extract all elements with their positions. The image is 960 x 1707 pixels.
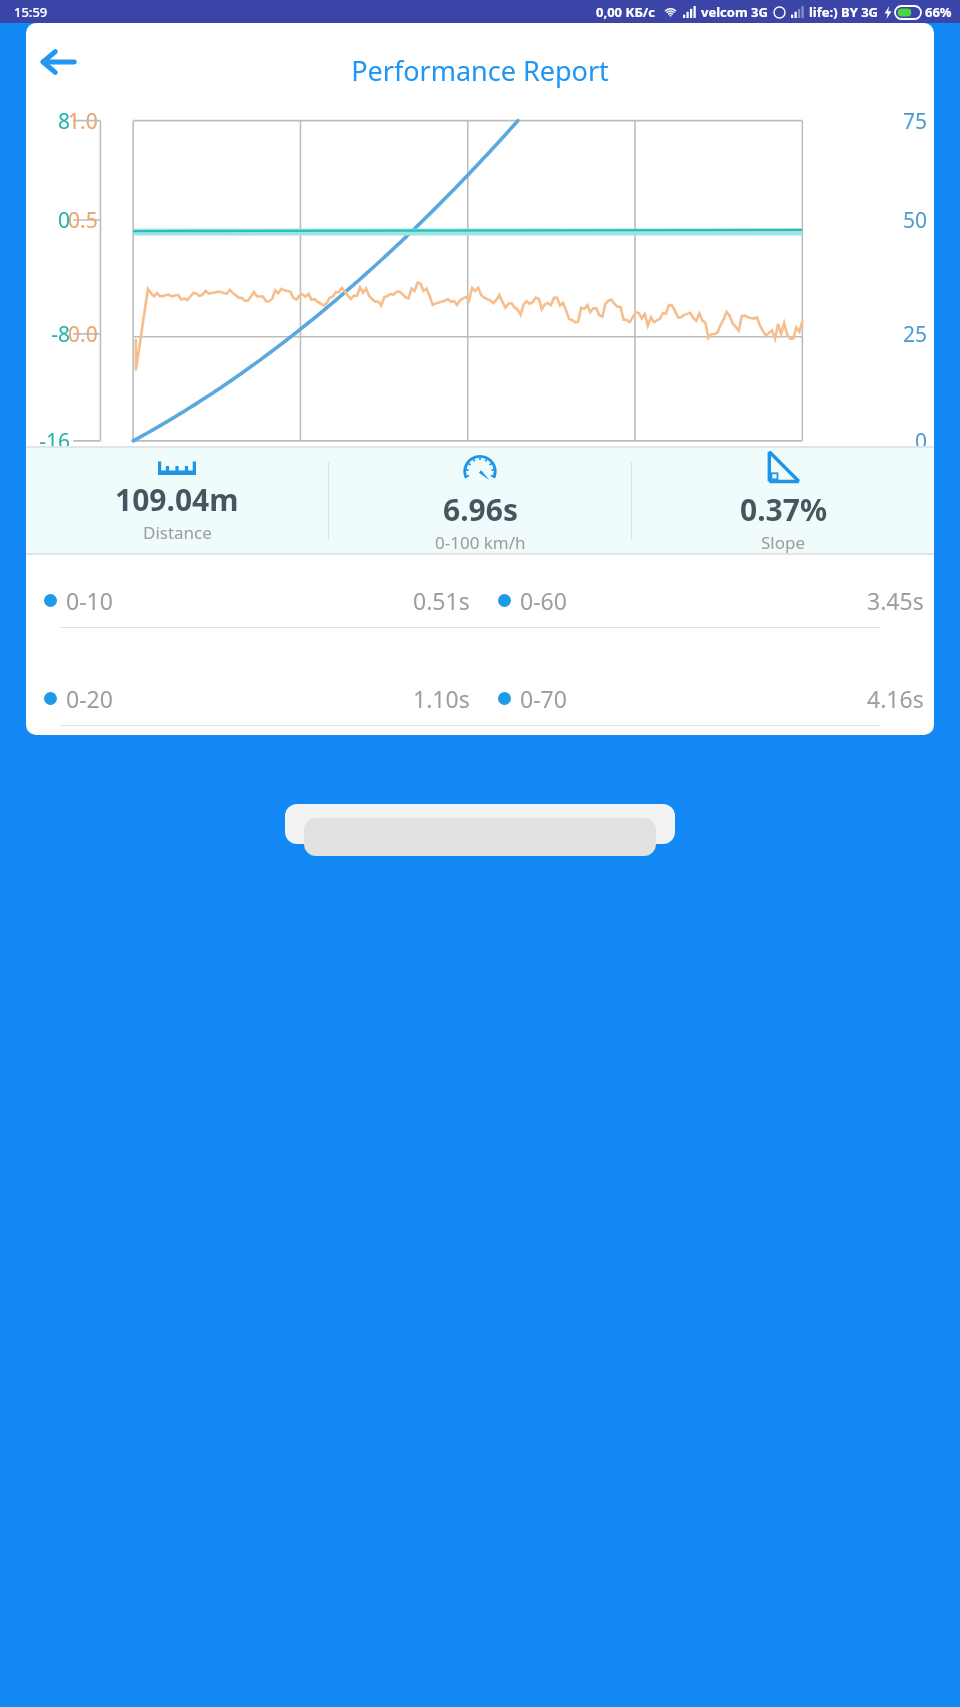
staticText: Performance Report [351, 52, 609, 89]
button[interactable]: Slope [632, 448, 934, 553]
staticText: 109.04m [115, 479, 239, 520]
staticText: 1.0 [68, 107, 98, 136]
staticText: 3.45s [867, 585, 924, 616]
staticText: 25 [903, 320, 928, 349]
staticText: 4.16s [867, 683, 924, 714]
staticText: Distance [143, 521, 212, 544]
staticText: 1.10s [413, 683, 470, 714]
button[interactable]: Acceleration [329, 448, 631, 553]
staticText: 0-60 [520, 585, 567, 616]
staticText: 0 [915, 427, 928, 456]
staticText: 50 [903, 206, 928, 235]
button[interactable]: 0-20 [26, 671, 934, 725]
staticText: 0 [28, 206, 70, 235]
other: Acceleration [461, 448, 499, 486]
staticText: 0.5 [68, 206, 98, 235]
staticText: -8 [28, 320, 70, 349]
staticText: 0-10 [66, 585, 113, 616]
staticText: 0.37% [740, 489, 827, 530]
staticText: 0-100 km/h [435, 531, 526, 553]
staticText: 0.51s [413, 585, 470, 616]
staticText: life:) BY 3G [809, 3, 879, 21]
other: Slope [764, 448, 802, 486]
staticText: Slope [761, 531, 806, 553]
button[interactable]: Distance [26, 458, 328, 544]
staticText: 6.96s [443, 489, 518, 530]
staticText: 0-70 [520, 683, 567, 714]
staticText: 75 [903, 107, 928, 136]
button[interactable]: 0-10 [26, 573, 934, 627]
staticText: velcom 3G [701, 3, 768, 21]
staticText: 15:59 [14, 3, 48, 21]
button[interactable]: Back [34, 38, 82, 86]
other: Distance [158, 458, 196, 476]
staticText: 66% [925, 3, 952, 21]
staticText: 0.0 [68, 320, 98, 349]
staticText: 0,00 КБ/с [596, 3, 656, 21]
staticText: 0-20 [66, 683, 113, 714]
staticText: 8 [28, 107, 70, 136]
staticText: -16 [28, 427, 70, 456]
